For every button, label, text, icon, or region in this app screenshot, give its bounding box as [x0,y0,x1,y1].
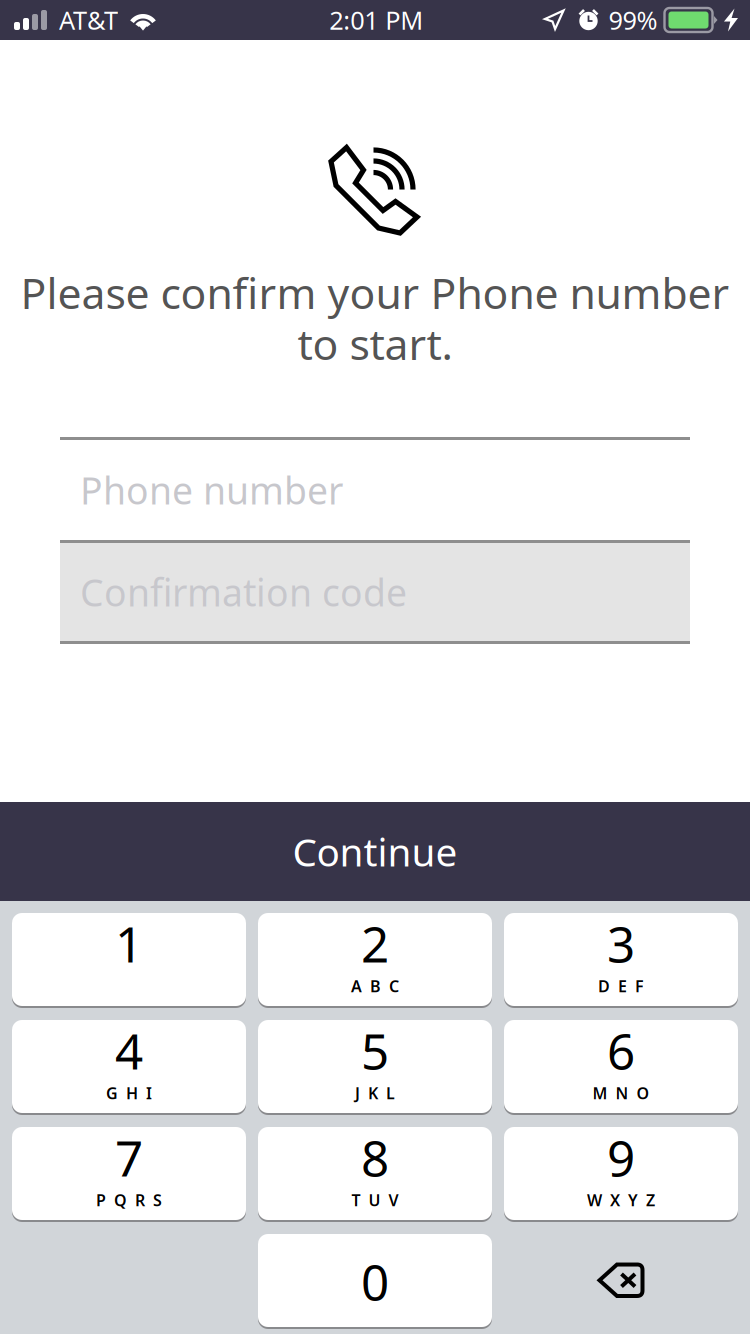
staticText: 6 [607,1017,635,1083]
staticText: Confirmation code [80,567,407,617]
button[interactable]: 2 [258,913,492,1006]
button[interactable]: 0 [258,1234,492,1327]
staticText: 8 [361,1124,389,1190]
staticText: D E F [598,975,644,997]
button[interactable]: 9 [504,1127,738,1220]
button[interactable]: 4 [12,1020,246,1113]
button[interactable]: 1 [12,913,246,1006]
staticText: 2 [361,910,389,976]
staticText: 1 [115,910,143,976]
button[interactable]: 8 [258,1127,492,1220]
staticText: 99% [608,3,657,37]
staticText: Phone number [80,465,343,515]
staticText: 4 [115,1017,143,1083]
staticText: AT&T [59,3,118,37]
staticText: 3 [607,910,635,976]
staticText: A B C [351,975,399,997]
staticText: 5 [361,1017,389,1083]
staticText: P Q R S [96,1189,162,1211]
staticText: J K L [355,1082,395,1104]
staticText: T U V [351,1189,398,1211]
staticText: Continue [292,826,457,877]
staticText: 2:01 PM [329,3,423,37]
staticText: W X Y Z [587,1189,655,1211]
staticText: G H I [106,1082,152,1104]
staticText: 0 [361,1248,389,1314]
button[interactable]: Continue [0,802,750,901]
button[interactable]: 3 [504,913,738,1006]
button[interactable]: 6 [504,1020,738,1113]
button[interactable]: 7 [12,1127,246,1220]
staticText: to start. [297,315,452,372]
button[interactable]: Delete [504,1234,738,1327]
staticText: Please confirm your Phone number [20,264,729,321]
staticText: M N O [592,1082,649,1104]
button[interactable]: 5 [258,1020,492,1113]
staticText: 9 [607,1124,635,1190]
staticText: 7 [115,1124,143,1190]
